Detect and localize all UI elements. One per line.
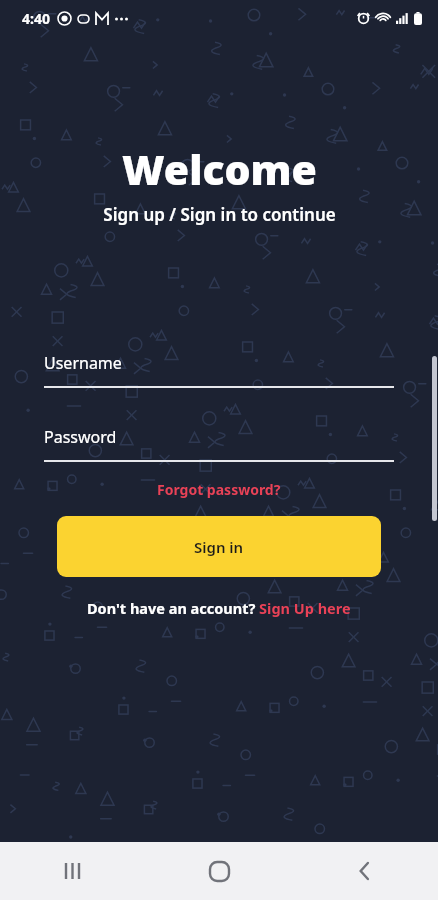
staticText: Don't have an account? Sign Up here (87, 598, 351, 618)
staticText: Password (44, 426, 117, 448)
button[interactable]: Don't have an account? Sign Up here (0, 598, 438, 618)
button[interactable]: Back (292, 842, 438, 900)
staticText: Sign in (194, 537, 244, 557)
staticText: Welcome (122, 141, 317, 197)
staticText: Sign up / Sign in to continue (103, 203, 336, 226)
button[interactable]: Sign in (57, 516, 381, 577)
staticText: 4:40 (22, 9, 50, 28)
button[interactable]: Forgot password? (0, 480, 438, 499)
staticText: Username (44, 352, 122, 374)
button[interactable]: Recents (0, 842, 146, 900)
button[interactable]: Home (146, 842, 292, 900)
button[interactable]: Password (44, 426, 394, 462)
staticText: Forgot password? (157, 480, 281, 499)
button[interactable]: Username (44, 352, 394, 388)
